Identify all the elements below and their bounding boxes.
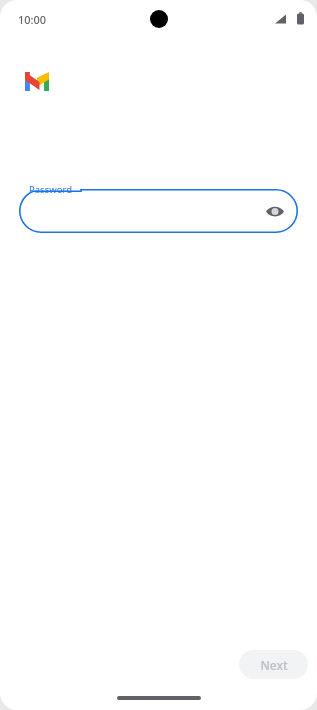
- button[interactable]: Next: [239, 650, 308, 679]
- staticText: 10:00: [18, 12, 47, 27]
- staticText: Next: [260, 657, 288, 673]
- button[interactable]: Show password: [19, 189, 298, 233]
- button[interactable]: Show password: [258, 194, 292, 228]
- staticText: Password: [29, 183, 72, 196]
